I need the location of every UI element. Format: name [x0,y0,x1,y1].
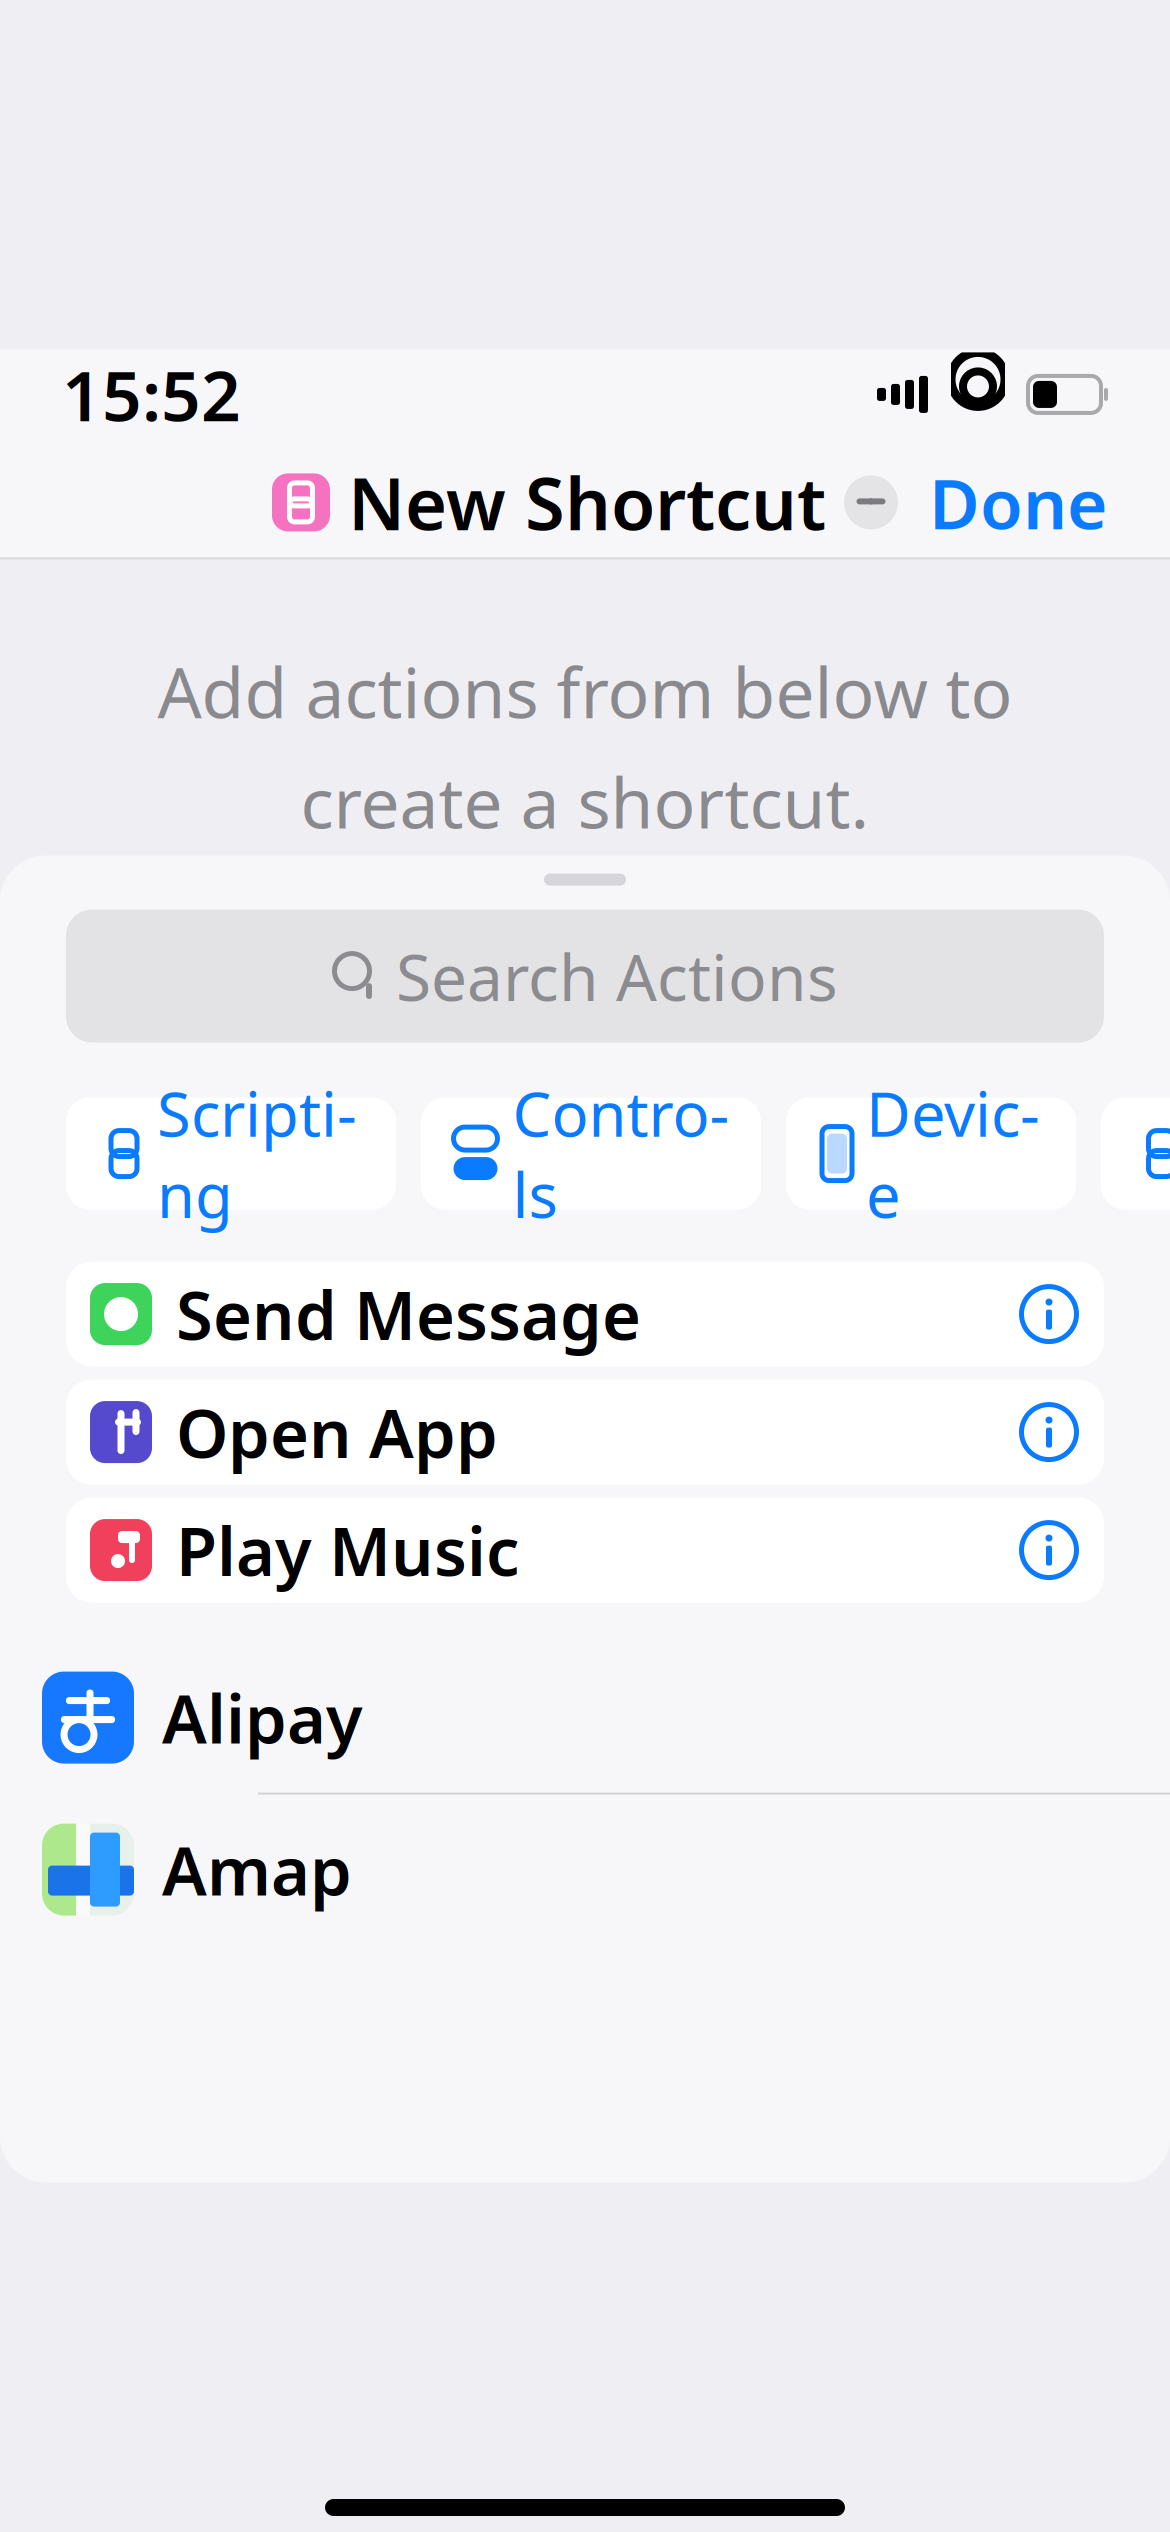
staticText: Open App [176,1388,498,1476]
button[interactable]: New Shortcut [272,455,898,550]
staticText: Play Music [176,1506,519,1594]
button[interactable]: Amap [0,1795,1170,1945]
staticText: Scripting [157,1072,357,1235]
staticText: Amap [162,1825,352,1914]
button[interactable]: Open App [66,1380,1104,1485]
staticText: Done [929,456,1108,548]
button[interactable]: Search Actions [66,910,1104,1043]
staticText: create a shortcut. [300,755,869,848]
button[interactable]: Device [786,1098,1076,1210]
button[interactable]: Share [1101,1098,1170,1210]
staticText: 15:52 [62,348,241,440]
staticText: New Shortcut [348,455,826,550]
button[interactable]: Alipay [0,1643,1170,1795]
button[interactable]: Done [917,446,1120,558]
staticText: Add actions from below to [157,645,1012,737]
button[interactable]: About this action [1010,1511,1088,1589]
button[interactable]: About this action [1010,1275,1088,1353]
staticText: Alipay [162,1673,363,1762]
button[interactable]: Scripting [66,1098,396,1210]
staticText: Controls [512,1072,729,1235]
staticText: Search Actions [396,934,838,1019]
staticText: Device [866,1072,1040,1235]
button[interactable]: Play Music [66,1498,1104,1603]
button[interactable]: Send Message [66,1262,1104,1367]
staticText: Send Message [176,1270,641,1358]
button[interactable]: Controls [421,1098,761,1210]
button[interactable]: About this action [1010,1393,1088,1471]
